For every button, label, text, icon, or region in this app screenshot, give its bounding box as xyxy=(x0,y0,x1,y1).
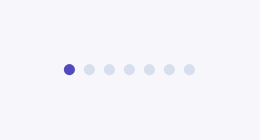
button[interactable]: Page 3 xyxy=(104,64,115,75)
button[interactable]: Page 1 xyxy=(64,64,75,75)
button[interactable]: Page 5 xyxy=(144,64,155,75)
button[interactable]: Page 4 xyxy=(124,64,135,75)
button[interactable]: Page 6 xyxy=(164,64,175,75)
button[interactable]: Page 2 xyxy=(84,64,95,75)
button[interactable]: Page 7 xyxy=(184,64,195,75)
